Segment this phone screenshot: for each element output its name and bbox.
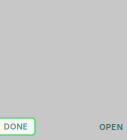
button[interactable]: DONE [0, 118, 35, 135]
staticText: OPEN [99, 122, 123, 132]
staticText: DONE [4, 122, 28, 131]
button[interactable]: OPEN [94, 120, 127, 134]
